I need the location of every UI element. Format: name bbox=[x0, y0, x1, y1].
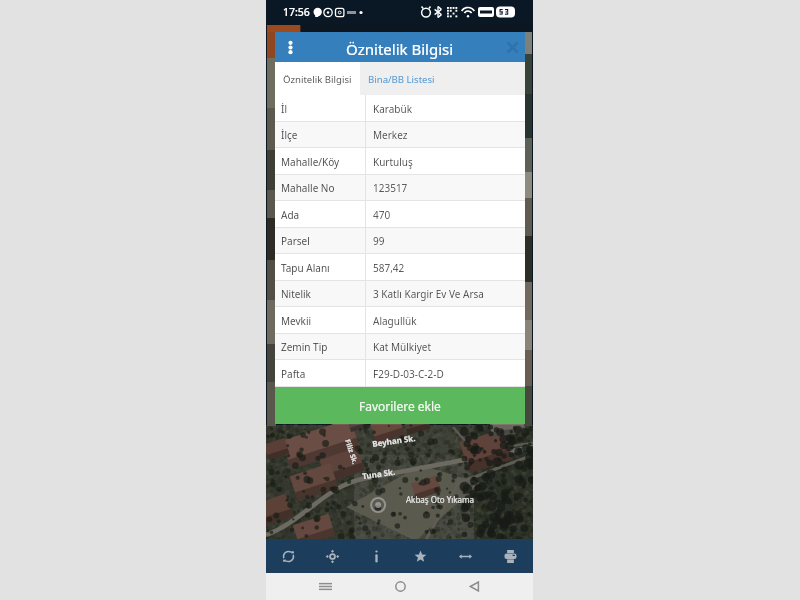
staticText: Mahalle/Köy bbox=[281, 155, 365, 169]
button[interactable]: Bina/BB Listesi bbox=[360, 62, 525, 95]
button[interactable]: Nitelik bbox=[275, 281, 525, 307]
button[interactable]: Pafta bbox=[275, 360, 525, 387]
staticText: Nitelik bbox=[281, 287, 365, 301]
staticText: 3 Katlı Kargir Ev Ve Arsa bbox=[373, 287, 484, 301]
staticText: 470 bbox=[373, 208, 391, 222]
button[interactable]: Öznitelik Bilgisi bbox=[275, 62, 360, 95]
staticText: Kurtuluş bbox=[373, 155, 413, 169]
staticText: 17:56 bbox=[283, 5, 310, 19]
button[interactable]: Ada bbox=[275, 201, 525, 228]
button[interactable]: Print bbox=[488, 539, 533, 573]
button[interactable]: Locate bbox=[310, 539, 354, 573]
staticText: 123517 bbox=[373, 181, 408, 195]
staticText: Mahalle No bbox=[281, 181, 365, 195]
staticText: 99 bbox=[373, 234, 385, 248]
staticText: Tapu Alanı bbox=[281, 261, 365, 275]
staticText: Akbaş Oto Yıkama bbox=[406, 494, 475, 505]
staticText: 587,42 bbox=[373, 261, 405, 275]
staticText: Favorilere ekle bbox=[359, 398, 441, 414]
staticText: Ada bbox=[281, 208, 365, 222]
staticText: Beyhan Sk. bbox=[371, 432, 416, 449]
staticText: Tuna Sk. bbox=[361, 466, 397, 481]
staticText: Kat Mülkiyet bbox=[373, 340, 432, 354]
staticText: Öznitelik Bilgisi bbox=[346, 39, 454, 59]
button[interactable]: Info bbox=[354, 539, 398, 573]
button[interactable]: Zemin Tip bbox=[275, 334, 525, 360]
button[interactable]: Favorilere ekle bbox=[275, 387, 525, 424]
staticText: Merkez bbox=[373, 128, 408, 142]
button[interactable]: More options bbox=[275, 32, 305, 62]
button[interactable]: Home bbox=[363, 573, 437, 600]
staticText: İlçe bbox=[281, 128, 365, 142]
button[interactable]: İlçe bbox=[275, 122, 525, 148]
button[interactable]: Back bbox=[437, 573, 511, 600]
staticText: Parsel bbox=[281, 234, 365, 248]
button[interactable]: Mahalle/Köy bbox=[275, 148, 525, 175]
staticText: Pafta bbox=[281, 367, 365, 381]
button[interactable]: Close bbox=[499, 32, 525, 62]
staticText: Mevkii bbox=[281, 314, 365, 328]
button[interactable]: Favorites bbox=[398, 539, 443, 573]
staticText: Öznitelik Bilgisi bbox=[283, 73, 352, 86]
staticText: Zemin Tip bbox=[281, 340, 365, 354]
staticText: Bina/BB Listesi bbox=[368, 73, 435, 86]
button[interactable]: İl bbox=[275, 95, 525, 122]
button[interactable]: Tapu Alanı bbox=[275, 254, 525, 281]
button[interactable]: Recent apps bbox=[288, 573, 363, 600]
button[interactable]: Mevkii bbox=[275, 307, 525, 334]
staticText: İl bbox=[281, 102, 365, 116]
button[interactable]: Measure bbox=[443, 539, 488, 573]
button[interactable]: Parsel bbox=[275, 228, 525, 254]
staticText: Karabük bbox=[373, 102, 413, 116]
button[interactable]: Mahalle No bbox=[275, 175, 525, 201]
staticText: F29-D-03-C-2-D bbox=[373, 367, 444, 381]
staticText: Alagullük bbox=[373, 314, 417, 328]
button[interactable]: Refresh bbox=[266, 539, 310, 573]
staticText: Filiz Sk. bbox=[342, 438, 360, 466]
